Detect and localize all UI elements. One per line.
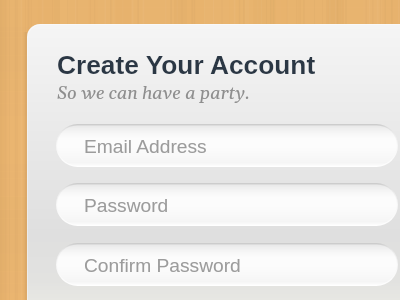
button[interactable]: Email Address	[56, 124, 398, 167]
staticText: Email Address	[84, 136, 207, 157]
staticText: Confirm Password	[84, 255, 241, 276]
staticText: Password	[84, 195, 169, 216]
button[interactable]: Confirm Password	[56, 243, 398, 286]
staticText: Create Your Account	[57, 50, 316, 79]
button[interactable]: Password	[56, 183, 398, 226]
staticText: So we can have a party.	[57, 82, 250, 105]
